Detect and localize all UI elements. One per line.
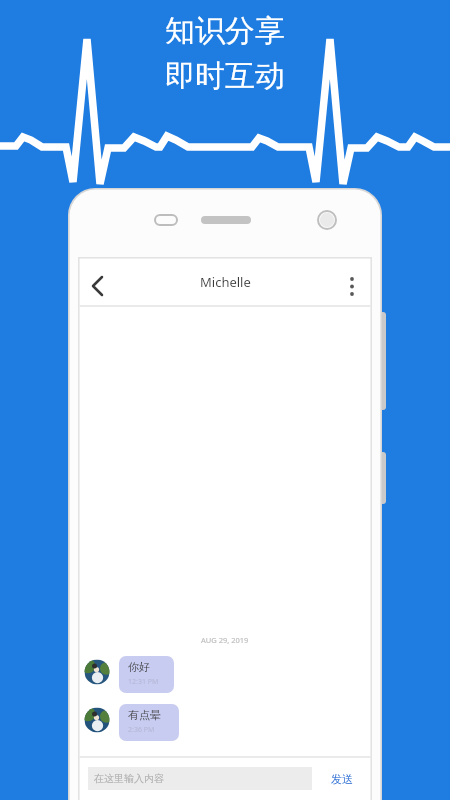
button[interactable]: More options xyxy=(336,264,370,298)
button[interactable]: Back xyxy=(83,264,119,300)
staticText: 在这里输入内容 xyxy=(94,772,164,785)
button[interactable]: Michelle xyxy=(79,258,371,306)
button[interactable]: 发送 xyxy=(320,765,364,792)
staticText: 2:36 PM xyxy=(128,725,155,735)
staticText: 知识分享 即时互动 xyxy=(165,12,285,95)
staticText: Michelle xyxy=(200,273,251,291)
button[interactable]: 在这里输入内容 xyxy=(88,767,312,790)
staticText: AUG 29, 2019 xyxy=(201,635,249,645)
staticText: 你好 xyxy=(128,660,150,674)
button[interactable]: 你好 xyxy=(119,656,174,693)
staticText: 12:31 PM xyxy=(128,677,159,687)
button[interactable]: 有点晕 xyxy=(119,704,179,741)
staticText: 有点晕 xyxy=(128,708,161,722)
staticText: 发送 xyxy=(331,772,353,786)
